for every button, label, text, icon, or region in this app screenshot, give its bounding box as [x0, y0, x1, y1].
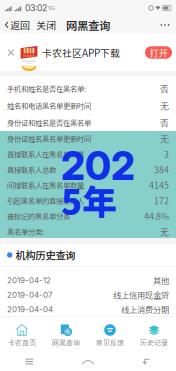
staticText: 44.8% — [144, 210, 169, 222]
staticText: 2019-04-07 — [7, 290, 53, 300]
staticText: 直接联系人总数 — [7, 164, 56, 175]
button[interactable]: 卡农首页 — [0, 316, 44, 352]
staticText: 无 — [160, 99, 169, 112]
staticText: 卡农社区APP下载 — [42, 45, 120, 60]
staticText: 其他 — [153, 274, 169, 286]
staticText: 3 — [164, 148, 169, 160]
staticText: 网黑查询 — [66, 17, 110, 33]
staticText: 4145 — [149, 179, 169, 191]
staticText: 返回 — [10, 18, 30, 32]
staticText: 身份证姓名黑名单更新时间 — [7, 133, 91, 144]
staticText: 卡农首页 — [8, 337, 36, 347]
staticText: 5G — [48, 5, 55, 11]
button[interactable]: More options — [159, 20, 171, 30]
staticText: 线上消费分期 — [121, 303, 169, 315]
staticText: 意见反馈 — [96, 337, 124, 347]
staticText: 身份证和姓名是否在黑名单 — [7, 117, 91, 128]
staticText: 2019-04-04 — [7, 304, 53, 314]
staticText: 引起黑名单的直接联系人 — [7, 195, 84, 206]
staticText: 姓名和电话黑名单更新时间 — [7, 100, 91, 111]
staticText: 线上信用现金贷 — [113, 289, 169, 301]
staticText: 历史记录 — [140, 337, 168, 347]
staticText: 打开 — [149, 46, 167, 59]
button[interactable]: Home — [59, 352, 117, 371]
button[interactable]: 关闭 — [34, 16, 58, 34]
staticText: 384 — [154, 163, 169, 176]
button[interactable]: 返回 — [5, 16, 34, 34]
staticText: 被标记的黑名单分类 — [7, 211, 70, 221]
button[interactable]: 意见反馈 — [88, 316, 132, 352]
staticText: 网黑查询 — [52, 337, 80, 347]
button[interactable]: Back — [117, 352, 176, 371]
staticText: 无 — [160, 225, 169, 238]
staticText: 黑名单分类: — [7, 226, 44, 237]
staticText: 直接联系人在黑名单数量 — [7, 149, 84, 159]
staticText: 172 — [154, 194, 169, 207]
staticText: 手机和姓名是否在黑名单: — [7, 83, 86, 94]
staticText: 03:02 — [25, 3, 47, 13]
button[interactable]: Close banner — [4, 43, 18, 61]
staticText: 关闭 — [36, 18, 56, 32]
staticText: 5年 — [61, 175, 117, 225]
button[interactable]: 打开 — [145, 46, 172, 59]
staticText: 2019-04-12 — [7, 275, 51, 285]
button[interactable]: Recent apps — [0, 352, 59, 371]
staticText: 否 — [160, 116, 169, 129]
staticText: 机构历史查询 — [15, 248, 75, 262]
staticText: 202 — [61, 143, 135, 189]
staticText: 间接联系人在黑名单数量 — [7, 180, 84, 190]
button[interactable]: 网黑查询 — [44, 316, 88, 352]
button[interactable]: 历史记录 — [132, 316, 176, 352]
staticText: 否 — [160, 82, 169, 95]
staticText: 无 — [160, 132, 169, 145]
